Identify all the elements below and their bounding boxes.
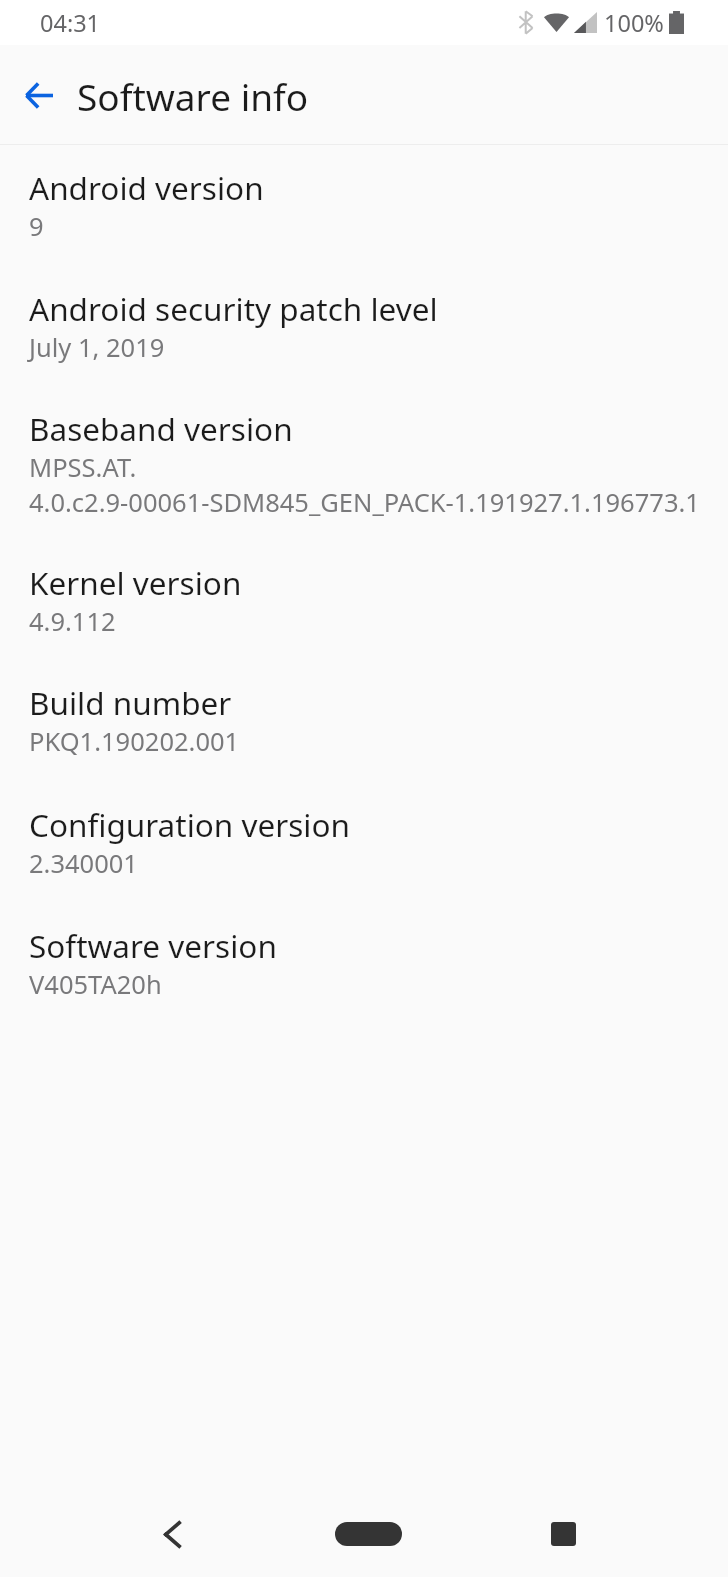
staticText: 4.9.112 xyxy=(29,604,116,639)
staticText: Build number xyxy=(29,681,232,724)
button[interactable]: Build number xyxy=(0,679,728,801)
staticText: 100% xyxy=(604,7,664,39)
button[interactable]: Home xyxy=(320,1497,416,1571)
staticText: Software info xyxy=(77,71,309,121)
other: Battery full xyxy=(669,11,684,34)
staticText: Kernel version xyxy=(29,561,242,604)
button[interactable]: Android version xyxy=(0,164,728,285)
other: Bluetooth on xyxy=(519,11,533,34)
staticText: 04:31 xyxy=(40,7,101,39)
button[interactable]: Baseband version xyxy=(0,405,728,559)
button[interactable]: Kernel version xyxy=(0,559,728,679)
button[interactable]: Software version xyxy=(0,922,728,1042)
button[interactable]: Configuration version xyxy=(0,801,728,922)
button[interactable]: Navigate up xyxy=(10,67,68,123)
staticText: July 1, 2019 xyxy=(29,330,165,365)
staticText: Baseband version xyxy=(29,407,293,450)
button[interactable]: Back xyxy=(141,1497,203,1571)
staticText: Software version xyxy=(29,924,277,967)
staticText: 2.340001 xyxy=(29,846,138,881)
button[interactable]: Recent apps xyxy=(523,1497,603,1571)
button[interactable]: Android security patch level xyxy=(0,285,728,405)
staticText: 9 xyxy=(29,209,44,244)
other: Mobile signal xyxy=(574,12,597,33)
staticText: PKQ1.190202.001 xyxy=(29,724,240,759)
staticText: Android version xyxy=(29,166,264,209)
staticText: MPSS.AT. 4.0.c2.9-00061-SDM845_GEN_PACK-… xyxy=(29,450,700,520)
staticText: Android security patch level xyxy=(29,287,438,330)
other: Wi-Fi xyxy=(544,12,569,32)
staticText: V405TA20h xyxy=(29,967,162,1002)
staticText: Configuration version xyxy=(29,803,351,846)
